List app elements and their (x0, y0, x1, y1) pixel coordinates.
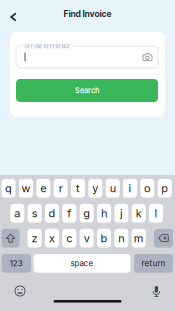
button[interactable]: q (2, 179, 16, 198)
staticText: Search (75, 86, 99, 95)
button[interactable]: k (132, 204, 146, 223)
staticText: f (67, 207, 71, 220)
button[interactable]: Emoji (13, 284, 26, 297)
staticText: w (21, 182, 30, 195)
staticText: m (134, 231, 144, 245)
button[interactable]: Shift (2, 229, 20, 247)
button[interactable]: s (28, 204, 42, 223)
staticText: a (14, 207, 20, 220)
button[interactable]: e (36, 179, 50, 198)
staticText: g (83, 207, 90, 220)
button[interactable]: w (19, 179, 33, 198)
button[interactable]: space (34, 254, 131, 273)
staticText: p (161, 182, 168, 195)
staticText: k (136, 207, 142, 220)
button[interactable]: l (149, 204, 163, 223)
staticText: i (129, 182, 132, 195)
button[interactable]: x (45, 229, 59, 247)
staticText: 123 (10, 258, 23, 268)
staticText: Find Invoice (63, 9, 111, 19)
staticText: u (110, 182, 116, 195)
button[interactable]: j (114, 204, 128, 223)
button[interactable]: p (158, 179, 172, 198)
staticText: n (118, 231, 124, 245)
staticText: return (141, 258, 165, 268)
button[interactable]: 123 (2, 254, 31, 273)
staticText: z (32, 231, 38, 245)
button[interactable]: Search (16, 79, 158, 102)
button[interactable]: z (28, 229, 42, 247)
staticText: r (59, 182, 63, 195)
button[interactable]: f (62, 204, 76, 223)
staticText: o (144, 182, 151, 195)
button[interactable]: r (54, 179, 68, 198)
button[interactable]: g (80, 204, 94, 223)
button[interactable]: c (62, 229, 76, 247)
button[interactable]: b (97, 229, 111, 247)
staticText: v (84, 231, 90, 245)
button[interactable]: a (10, 204, 24, 223)
button[interactable]: Dictation (150, 286, 162, 298)
staticText: t (76, 182, 80, 195)
button[interactable]: v (80, 229, 94, 247)
staticText: space (71, 258, 94, 268)
staticText: q (5, 182, 12, 195)
button[interactable]: o (140, 179, 154, 198)
button[interactable]: t (71, 179, 85, 198)
button[interactable]: Back (2, 6, 24, 28)
staticText: b (100, 231, 107, 245)
staticText: c (66, 231, 72, 245)
button[interactable]: h (97, 204, 111, 223)
button[interactable]: Scan invoice (140, 49, 155, 64)
button[interactable]: m (132, 229, 146, 247)
staticText: y (92, 182, 98, 195)
staticText: OFFLINE REFERENCE (24, 44, 70, 49)
staticText: s (32, 207, 38, 220)
staticText: h (101, 207, 107, 220)
button[interactable]: u (106, 179, 120, 198)
button[interactable]: Delete (154, 229, 173, 247)
staticText: e (40, 182, 46, 195)
staticText: j (120, 207, 123, 220)
staticText: d (48, 207, 55, 220)
staticText: x (49, 231, 55, 245)
button[interactable]: n (114, 229, 128, 247)
button[interactable]: return (134, 254, 173, 273)
button[interactable]: i (123, 179, 137, 198)
staticText: l (155, 207, 158, 220)
button[interactable]: d (45, 204, 59, 223)
button[interactable]: y (88, 179, 102, 198)
